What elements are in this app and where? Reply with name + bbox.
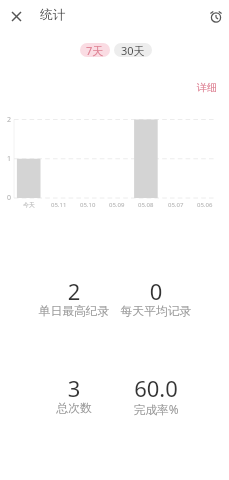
button[interactable]: 0 <box>106 276 206 320</box>
staticText: 统计 <box>40 7 66 23</box>
staticText: 完成率% <box>106 401 206 417</box>
button[interactable]: Reminder <box>207 8 225 26</box>
button[interactable]: 2 <box>24 276 124 320</box>
button[interactable]: 60.0 <box>106 373 206 417</box>
button[interactable]: 详细 <box>192 79 222 96</box>
staticText: 05.11 <box>51 201 67 209</box>
staticText: 详细 <box>197 81 217 94</box>
staticText: 30天 <box>121 43 145 57</box>
staticText: 每天平均记录 <box>106 304 206 319</box>
staticText: 2 <box>24 276 124 306</box>
staticText: 05.08 <box>138 201 154 209</box>
button[interactable]: 30天 <box>114 43 152 57</box>
staticText: 7天 <box>86 43 104 57</box>
staticText: 0 <box>7 193 12 203</box>
staticText: 单日最高纪录 <box>24 304 124 319</box>
staticText: 05.10 <box>80 201 96 209</box>
staticText: 今天 <box>23 201 35 209</box>
button[interactable]: Close <box>5 5 28 28</box>
staticText: 05.09 <box>109 201 125 209</box>
staticText: 2 <box>7 115 12 125</box>
staticText: 总次数 <box>24 401 124 416</box>
staticText: 0 <box>106 276 206 306</box>
button[interactable]: 3 <box>24 373 124 417</box>
button[interactable]: 7天 <box>80 43 110 57</box>
staticText: 05.06 <box>197 201 213 209</box>
staticText: 05.07 <box>168 201 184 209</box>
staticText: 3 <box>24 373 124 403</box>
staticText: 1 <box>7 154 12 164</box>
staticText: 60.0 <box>106 373 206 403</box>
